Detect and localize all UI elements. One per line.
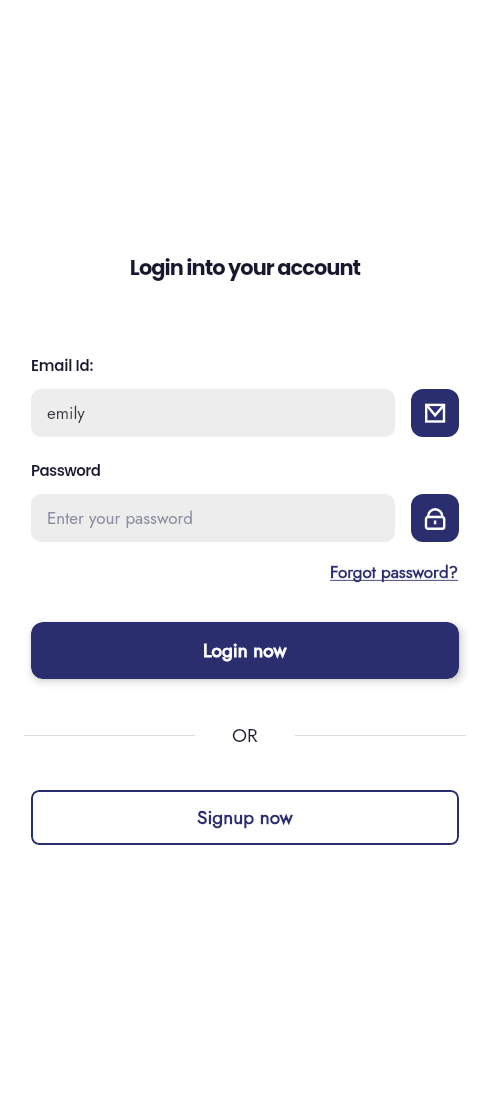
staticText: OR — [232, 722, 258, 749]
button[interactable]: Login now — [31, 622, 459, 679]
button[interactable]: Signup now — [31, 790, 459, 845]
staticText: emily — [47, 401, 85, 426]
staticText: Login into your account — [0, 253, 490, 282]
staticText: Password — [31, 460, 101, 481]
button[interactable] — [411, 389, 459, 437]
staticText: Email Id: — [31, 355, 94, 376]
staticText: Enter your password — [47, 506, 193, 531]
button[interactable]: Enter your password — [31, 494, 395, 542]
staticText: Login now — [203, 637, 287, 664]
button[interactable]: emily — [31, 389, 395, 437]
button[interactable]: Forgot password? — [330, 560, 459, 585]
button[interactable] — [411, 494, 459, 542]
staticText: Signup now — [197, 804, 293, 831]
